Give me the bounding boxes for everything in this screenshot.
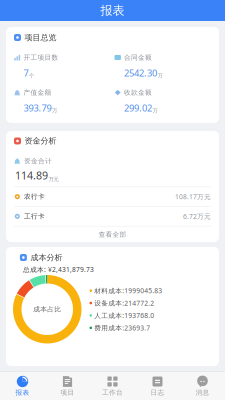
staticText: 消息 — [195, 388, 209, 397]
staticText: 项目总览 — [24, 33, 56, 42]
button[interactable]: 项目 — [45, 372, 90, 400]
staticText: 产值金额 — [23, 88, 51, 97]
staticText: 设备成本:214772.2 — [94, 299, 154, 307]
staticText: 收款金额 — [124, 88, 152, 97]
staticText: 资金分析 — [24, 136, 56, 146]
staticText: 日志 — [150, 388, 164, 397]
staticText: 6.72万元 — [183, 212, 211, 221]
staticText: 农行卡 — [24, 193, 45, 201]
staticText: 报表 — [15, 388, 29, 397]
staticText: 299.02 — [124, 102, 152, 114]
staticText: 个 — [29, 72, 34, 79]
staticText: 108.17万元 — [175, 192, 211, 201]
staticText: 费用成本:23693.7 — [94, 323, 150, 332]
staticText: 合同金额 — [124, 53, 152, 62]
staticText: 查看全部 — [98, 230, 126, 239]
button[interactable]: 报表 — [0, 372, 45, 400]
staticText: 7 — [23, 67, 28, 79]
staticText: 总成本: ¥2,431,879.73 — [23, 265, 94, 274]
button[interactable]: 查看全部 — [14, 227, 211, 243]
staticText: 万元 — [48, 176, 58, 182]
staticText: 万 — [52, 107, 57, 114]
staticText: 人工成本:193768.0 — [94, 311, 154, 320]
staticText: 2542.30 — [124, 67, 157, 79]
staticText: 成本分析 — [30, 253, 62, 262]
staticText: 393.79 — [23, 102, 51, 114]
staticText: 114.89 — [15, 168, 48, 182]
staticText: 成本占比 — [33, 305, 61, 313]
staticText: 工行卡 — [24, 212, 45, 220]
staticText: 材料成本:1999045.83 — [94, 286, 162, 295]
button[interactable]: 消息 — [180, 372, 225, 400]
button[interactable]: 工行卡 — [14, 207, 211, 226]
staticText: 开工项目数 — [23, 53, 58, 62]
staticText: 资金合计 — [24, 157, 52, 165]
staticText: 万 — [157, 72, 162, 79]
button[interactable]: 日志 — [135, 372, 180, 400]
staticText: 报表 — [100, 3, 124, 18]
staticText: 万 — [152, 107, 157, 114]
staticText: 项目 — [60, 388, 74, 397]
button[interactable]: 工作台 — [90, 372, 135, 400]
button[interactable]: 农行卡 — [14, 187, 211, 206]
staticText: 工作台 — [102, 388, 123, 397]
